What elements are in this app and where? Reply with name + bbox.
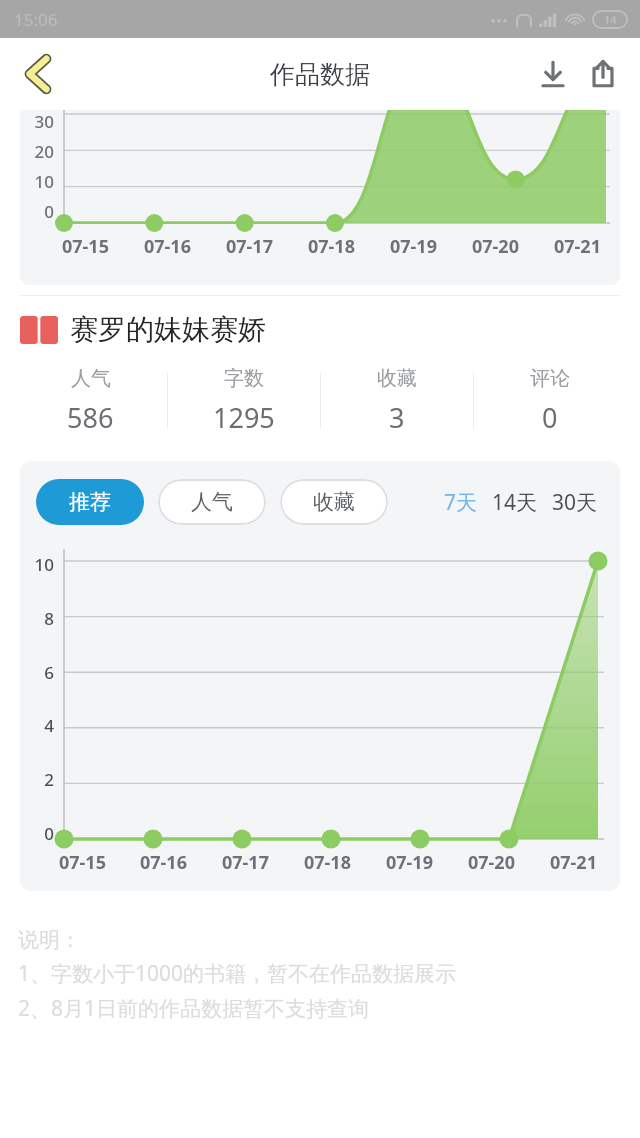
- button[interactable]: 人气: [158, 479, 266, 525]
- staticText: 3: [389, 399, 405, 436]
- staticText: 07-21: [554, 234, 601, 259]
- staticText: 30: [24, 110, 54, 133]
- button[interactable]: 30天: [550, 482, 600, 523]
- button[interactable]: 收藏: [321, 359, 473, 443]
- staticText: 07-15: [59, 850, 106, 875]
- staticText: 15:06: [14, 8, 58, 31]
- staticText: 8: [24, 607, 54, 630]
- staticText: 0: [542, 399, 558, 436]
- staticText: 4: [24, 714, 54, 737]
- staticText: 0: [24, 200, 54, 223]
- staticText: 30天: [552, 488, 598, 517]
- staticText: 07-21: [550, 850, 597, 875]
- staticText: 1295: [213, 399, 275, 436]
- staticText: 收藏: [313, 489, 355, 515]
- staticText: 20: [24, 140, 54, 163]
- button[interactable]: 评论: [474, 359, 626, 443]
- staticText: 2: [24, 768, 54, 791]
- button[interactable]: 14天: [490, 482, 540, 523]
- staticText: 评论: [530, 366, 570, 391]
- staticText: 7天: [444, 488, 478, 517]
- staticText: 1、字数小于1000的书籍，暂不在作品数据展示: [18, 959, 457, 988]
- staticText: 10: [24, 170, 54, 193]
- staticText: 07-17: [222, 850, 269, 875]
- staticText: 14天: [492, 488, 538, 517]
- staticText: 10: [24, 553, 54, 576]
- staticText: 6: [24, 661, 54, 684]
- button[interactable]: 人气: [14, 359, 167, 443]
- button[interactable]: 推荐: [36, 479, 144, 525]
- staticText: 07-16: [144, 234, 191, 259]
- staticText: 人气: [71, 366, 111, 391]
- staticText: 说明：: [18, 927, 81, 953]
- button[interactable]: 字数: [168, 359, 320, 443]
- staticText: 07-18: [308, 234, 355, 259]
- staticText: 07-20: [472, 234, 519, 259]
- button[interactable]: Back: [10, 46, 66, 102]
- staticText: 07-19: [390, 234, 437, 259]
- staticText: 07-18: [304, 850, 351, 875]
- button[interactable]: 收藏: [280, 479, 388, 525]
- staticText: 14: [604, 12, 617, 27]
- staticText: 0: [24, 822, 54, 845]
- staticText: 07-20: [468, 850, 515, 875]
- staticText: 07-17: [226, 234, 273, 259]
- staticText: 作品数据: [270, 59, 370, 90]
- staticText: 赛罗的妹妹赛娇: [70, 312, 266, 347]
- staticText: 07-16: [140, 850, 187, 875]
- staticText: 07-15: [62, 234, 109, 259]
- button[interactable]: 7天: [442, 482, 480, 523]
- staticText: 586: [67, 399, 114, 436]
- staticText: 人气: [191, 489, 233, 515]
- staticText: 字数: [224, 366, 264, 391]
- button[interactable]: 赛罗的妹妹赛娇: [20, 312, 640, 347]
- button[interactable]: Share: [578, 49, 628, 99]
- staticText: 07-19: [386, 850, 433, 875]
- staticText: 2、8月1日前的作品数据暂不支持查询: [18, 994, 370, 1023]
- staticText: 收藏: [377, 366, 417, 391]
- button[interactable]: Download: [528, 49, 578, 99]
- staticText: 推荐: [69, 489, 111, 515]
